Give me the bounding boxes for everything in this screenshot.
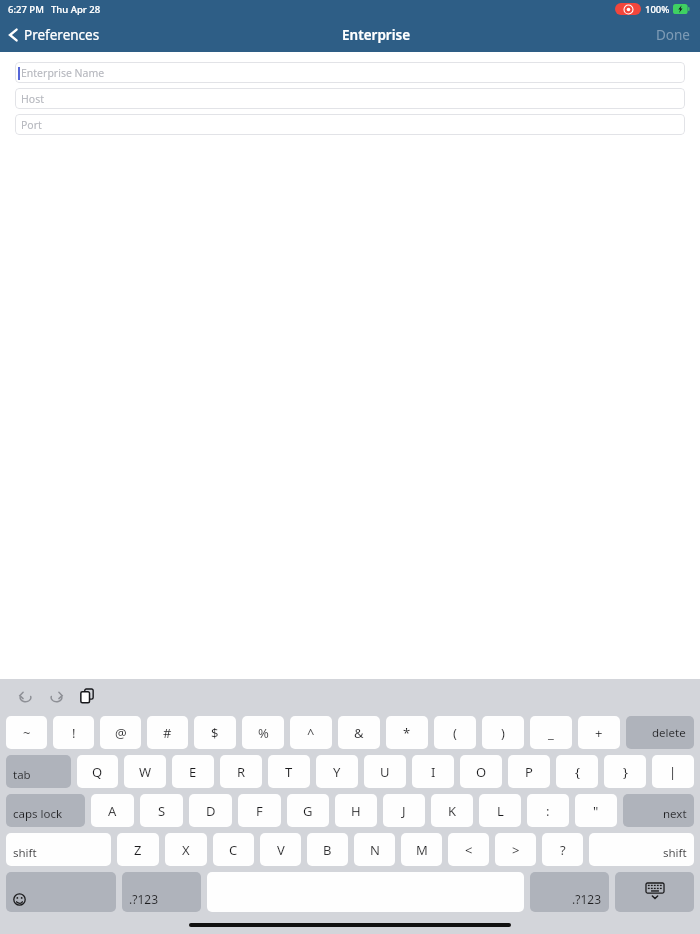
button[interactable]: ( xyxy=(434,716,476,749)
button[interactable]: shift xyxy=(589,833,694,866)
button[interactable]: P xyxy=(508,755,550,788)
button[interactable]: U xyxy=(364,755,406,788)
button[interactable]: * xyxy=(386,716,428,749)
staticText: Port xyxy=(21,118,42,132)
staticText: ( xyxy=(453,724,457,742)
button[interactable]: delete xyxy=(626,716,694,749)
button[interactable]: Enterprise Name xyxy=(15,62,685,83)
staticText: O xyxy=(476,763,487,781)
staticText: # xyxy=(163,724,172,742)
button[interactable]: Hide keyboard xyxy=(615,872,694,912)
staticText: ? xyxy=(560,841,566,859)
staticText: delete xyxy=(652,725,686,741)
button[interactable]: > xyxy=(495,833,536,866)
staticText: } xyxy=(623,763,628,781)
staticText: C xyxy=(229,841,238,859)
button[interactable]: " xyxy=(575,794,617,827)
button[interactable]: D xyxy=(189,794,232,827)
staticText: Thu Apr 28 xyxy=(51,3,101,16)
staticText: U xyxy=(380,763,390,781)
staticText: V xyxy=(277,841,285,859)
staticText: Enterprise xyxy=(342,26,411,44)
button[interactable]: G xyxy=(287,794,329,827)
staticText: % xyxy=(258,724,269,742)
staticText: shift xyxy=(663,845,687,861)
button[interactable]: | xyxy=(652,755,694,788)
button[interactable]: @ xyxy=(100,716,141,749)
button[interactable]: L xyxy=(479,794,521,827)
staticText: 100% xyxy=(645,3,670,16)
button[interactable]: $ xyxy=(194,716,236,749)
button[interactable]: { xyxy=(556,755,598,788)
staticText: B xyxy=(323,841,332,859)
staticText: * xyxy=(403,724,411,742)
button[interactable]: % xyxy=(242,716,284,749)
button[interactable]: ? xyxy=(542,833,583,866)
button[interactable]: T xyxy=(268,755,310,788)
button[interactable]: B xyxy=(307,833,348,866)
button[interactable]: Emoji xyxy=(6,872,116,912)
staticText: T xyxy=(285,763,293,781)
button[interactable]: C xyxy=(213,833,254,866)
staticText: $ xyxy=(211,724,219,742)
button[interactable]: caps lock xyxy=(6,794,85,827)
staticText: Host xyxy=(21,92,44,106)
staticText: H xyxy=(351,802,361,820)
button[interactable]: Z xyxy=(117,833,159,866)
button[interactable]: H xyxy=(335,794,377,827)
button[interactable]: A xyxy=(91,794,134,827)
button[interactable]: W xyxy=(124,755,166,788)
staticText: + xyxy=(595,724,603,742)
button[interactable]: : xyxy=(527,794,569,827)
button[interactable]: shift xyxy=(6,833,111,866)
button[interactable]: # xyxy=(147,716,188,749)
staticText: M xyxy=(416,841,428,859)
button[interactable]: X xyxy=(165,833,207,866)
button[interactable]: next xyxy=(623,794,694,827)
button[interactable]: < xyxy=(448,833,489,866)
button[interactable]: Undo xyxy=(12,683,38,709)
button[interactable]: tab xyxy=(6,755,71,788)
button[interactable]: V xyxy=(260,833,301,866)
button[interactable]: O xyxy=(460,755,502,788)
button[interactable]: I xyxy=(412,755,454,788)
button[interactable]: Port xyxy=(15,114,685,135)
staticText: .?123 xyxy=(572,891,602,907)
button[interactable]: ~ xyxy=(6,716,47,749)
button[interactable]: & xyxy=(338,716,380,749)
button[interactable]: } xyxy=(604,755,646,788)
staticText: J xyxy=(402,802,406,820)
button[interactable]: ! xyxy=(53,716,94,749)
button[interactable]: .?123 xyxy=(122,872,201,912)
button[interactable]: Host xyxy=(15,88,685,109)
button[interactable]: ^ xyxy=(290,716,332,749)
button[interactable]: _ xyxy=(530,716,572,749)
button[interactable]: E xyxy=(172,755,214,788)
button[interactable]: Paste xyxy=(74,683,100,709)
button[interactable]: N xyxy=(354,833,395,866)
staticText: { xyxy=(575,763,580,781)
button[interactable]: Redo xyxy=(43,683,69,709)
staticText: 6:27 PM xyxy=(8,3,44,16)
button[interactable]: ) xyxy=(482,716,524,749)
button[interactable]: K xyxy=(431,794,473,827)
staticText: Preferences xyxy=(24,26,100,44)
button[interactable]: S xyxy=(140,794,183,827)
button[interactable]: .?123 xyxy=(530,872,609,912)
button[interactable]: Q xyxy=(77,755,118,788)
staticText: F xyxy=(256,802,263,820)
staticText: N xyxy=(370,841,380,859)
button[interactable]: J xyxy=(383,794,425,827)
button[interactable]: F xyxy=(238,794,281,827)
button[interactable]: R xyxy=(220,755,262,788)
button[interactable]: M xyxy=(401,833,442,866)
staticText: L xyxy=(497,802,504,820)
button[interactable]: Preferences xyxy=(0,22,108,48)
button[interactable]: + xyxy=(578,716,620,749)
button[interactable]: Done xyxy=(646,22,700,48)
staticText: E xyxy=(189,763,197,781)
button[interactable]: Y xyxy=(316,755,358,788)
staticText: " xyxy=(593,802,599,820)
staticText: Z xyxy=(134,841,142,859)
